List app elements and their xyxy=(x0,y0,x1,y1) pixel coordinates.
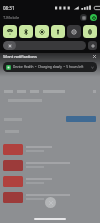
staticText: 08:31 xyxy=(3,5,15,11)
staticText: T-Mobile xyxy=(3,15,20,20)
button[interactable]: Quick setting 5 xyxy=(67,25,81,38)
button[interactable]: Brightness xyxy=(3,41,86,50)
button[interactable]: Close xyxy=(45,197,56,208)
button[interactable]: Auto brightness xyxy=(88,41,97,50)
button[interactable]: Clear all xyxy=(92,54,97,59)
button[interactable]: Settings xyxy=(80,14,87,21)
button[interactable]: Quick setting 4 xyxy=(51,25,65,38)
button[interactable]: Quick setting 2 xyxy=(19,25,33,38)
button[interactable]: Device Health • Charging slowly • 5 hour… xyxy=(3,62,97,72)
staticText: Silent notifications xyxy=(3,54,37,59)
button[interactable]: Quick setting 6 xyxy=(83,25,97,38)
button[interactable]: Quick setting 1 xyxy=(3,25,17,38)
button[interactable]: Power xyxy=(90,14,97,21)
staticText: Device Health • Charging slowly • 5 hour… xyxy=(13,65,84,69)
button[interactable]: Quick setting 3 xyxy=(35,25,49,38)
